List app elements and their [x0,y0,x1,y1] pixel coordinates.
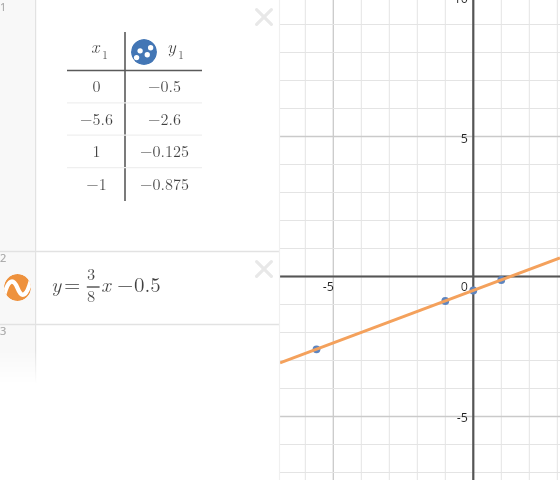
staticText: −0.125 [140,139,189,162]
staticText: y [167,33,176,58]
staticText: 3 [87,261,96,284]
staticText: y [51,268,62,298]
staticText: 10 [453,0,468,7]
staticText: 1 [102,45,109,62]
staticText: − [117,268,134,298]
staticText: −5.6 [80,107,113,130]
button[interactable]: Toggle line visibility [4,274,31,301]
staticText: −2.6 [148,107,181,130]
staticText: -5 [456,409,468,426]
staticText: 3 [0,323,7,337]
staticText: 0.5 [134,268,161,298]
staticText: 5 [460,130,468,147]
staticText: 0 [92,74,101,97]
staticText: -5 [322,278,334,295]
staticText: −0.875 [140,172,189,195]
staticText: 8 [87,283,96,306]
staticText: x [91,33,100,58]
staticText: x [101,268,111,298]
staticText: 0 [460,278,468,295]
staticText: −1 [86,172,107,195]
staticText: 1 [178,45,185,62]
staticText: 1 [0,0,7,13]
staticText: −0.5 [148,74,181,97]
button[interactable]: Point style [131,39,157,65]
staticText: = [64,268,81,298]
button[interactable]: Delete expression [255,8,273,26]
staticText: 1 [92,139,101,162]
button[interactable]: Delete expression [255,260,273,278]
staticText: 2 [0,250,7,264]
